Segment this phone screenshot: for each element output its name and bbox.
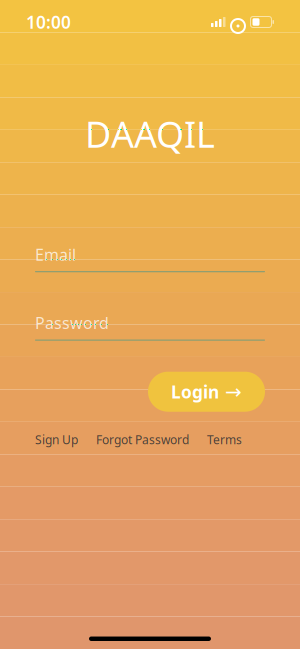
staticText: DAAQIL (85, 110, 215, 158)
staticText: Password (35, 312, 109, 333)
button[interactable]: Forgot Password (96, 428, 189, 452)
button[interactable]: Sign Up (35, 428, 78, 452)
staticText: Login (171, 380, 219, 403)
staticText: Terms (207, 432, 242, 448)
button[interactable]: Terms (207, 428, 242, 452)
staticText: Email (35, 244, 76, 265)
staticText: → (225, 380, 242, 403)
staticText: 10:00 (26, 10, 71, 33)
staticText: Sign Up (35, 432, 78, 448)
staticText: Forgot Password (96, 432, 189, 448)
button[interactable]: Login (148, 372, 265, 412)
